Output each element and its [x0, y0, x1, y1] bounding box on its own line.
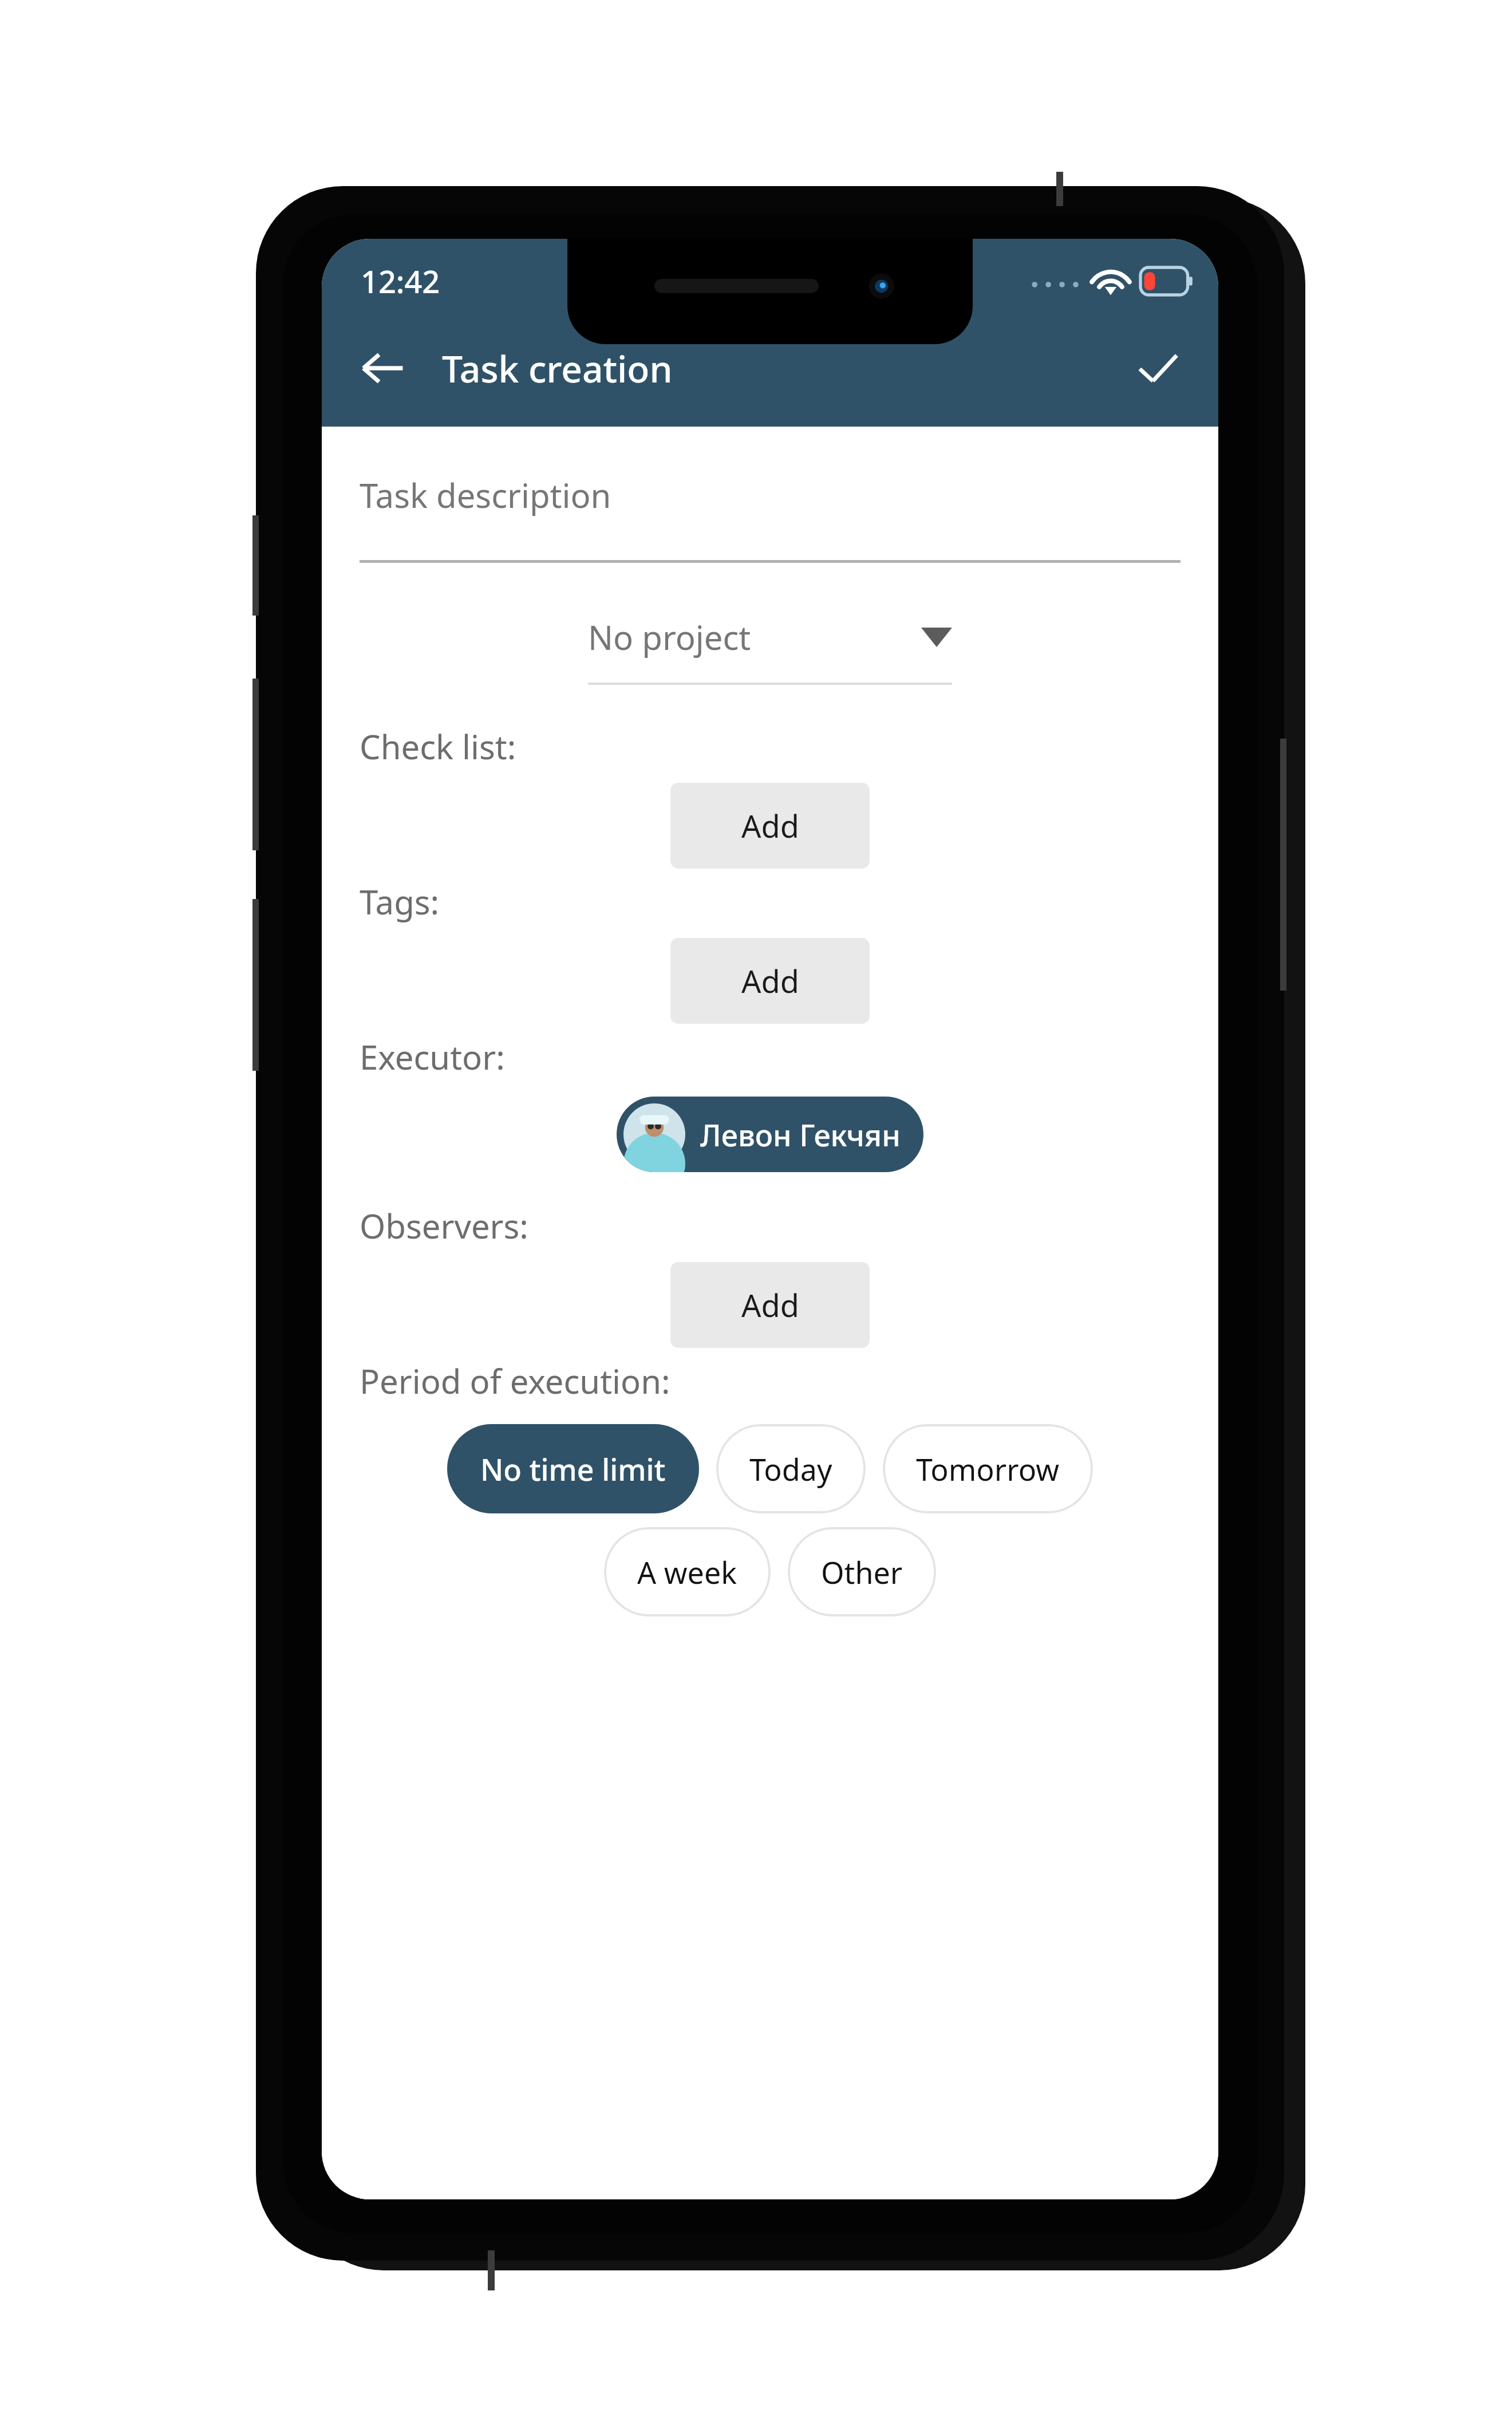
staticText: Task description	[360, 472, 611, 518]
button[interactable]: Левон Гекчян	[617, 1097, 923, 1172]
staticText: Today	[749, 1449, 832, 1489]
button[interactable]: Add	[670, 1262, 870, 1348]
staticText: Add	[741, 960, 799, 1002]
staticText: A week	[637, 1552, 737, 1592]
button[interactable]: Back	[349, 335, 416, 401]
staticText: Period of execution:	[360, 1358, 670, 1403]
button[interactable]: Add	[670, 783, 870, 869]
staticText: Executor:	[360, 1034, 505, 1079]
button[interactable]: Today	[716, 1424, 866, 1513]
staticText: Tomorrow	[916, 1449, 1060, 1489]
staticText: Task creation	[442, 344, 673, 393]
staticText: Other	[821, 1552, 903, 1592]
button[interactable]: Other	[788, 1527, 936, 1616]
staticText: Observers:	[360, 1203, 528, 1248]
staticText: No project	[588, 614, 751, 660]
button[interactable]: Add	[670, 938, 870, 1024]
button[interactable]: No project	[588, 614, 952, 685]
staticText: Add	[741, 1284, 799, 1326]
button[interactable]: No time limit	[447, 1424, 699, 1513]
staticText: Tags:	[360, 879, 440, 924]
staticText: Add	[741, 805, 799, 847]
button[interactable]: Task description	[360, 472, 1181, 563]
staticText: No time limit	[480, 1449, 666, 1489]
staticText: Check list:	[360, 724, 516, 769]
staticText: Левон Гекчян	[700, 1114, 901, 1155]
button[interactable]: Save task	[1124, 335, 1191, 401]
button[interactable]: A week	[604, 1527, 771, 1616]
staticText: 12:42	[361, 260, 440, 302]
button[interactable]: Tomorrow	[883, 1424, 1093, 1513]
